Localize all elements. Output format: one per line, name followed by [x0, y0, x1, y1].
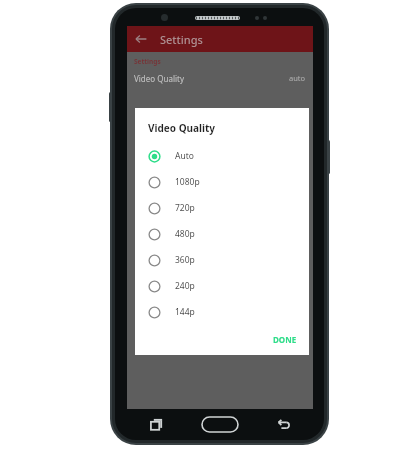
staticText: Auto — [175, 150, 194, 162]
button[interactable]: 240p — [135, 273, 309, 299]
staticText: 360p — [175, 254, 195, 266]
button[interactable]: 720p — [135, 195, 309, 221]
button[interactable]: Back — [275, 417, 291, 433]
staticText: Video Quality — [148, 121, 216, 135]
button[interactable]: 1080p — [135, 169, 309, 195]
staticText: DONE — [273, 334, 297, 345]
staticText: auto — [289, 73, 306, 83]
staticText: 144p — [175, 306, 195, 318]
staticText: Settings — [134, 57, 161, 66]
button[interactable]: 144p — [135, 299, 309, 325]
staticText: 720p — [175, 202, 195, 214]
button[interactable]: Home — [202, 417, 238, 432]
button[interactable]: 360p — [135, 247, 309, 273]
staticText: 1080p — [175, 176, 200, 188]
button[interactable]: Recent apps — [149, 417, 165, 433]
button[interactable]: 480p — [135, 221, 309, 247]
staticText: 480p — [175, 228, 195, 240]
button[interactable]: DONE — [269, 331, 301, 348]
button[interactable]: Video Quality — [127, 71, 313, 85]
staticText: Video Quality — [134, 73, 184, 84]
staticText: Settings — [160, 32, 203, 47]
button[interactable]: Navigate up — [132, 30, 150, 48]
button[interactable]: Auto — [135, 143, 309, 169]
staticText: 240p — [175, 280, 195, 292]
